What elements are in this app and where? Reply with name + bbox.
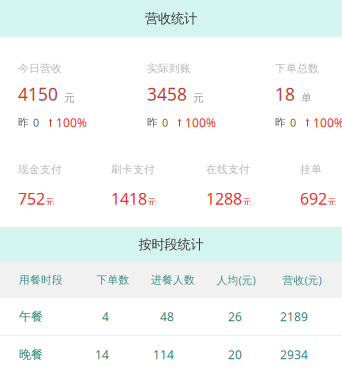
staticText: 3458 — [147, 82, 187, 105]
staticText: 114 — [153, 346, 174, 362]
staticText: 下单总数 — [275, 62, 319, 75]
staticText: 挂单 — [300, 163, 322, 176]
button[interactable]: 在线支付 — [206, 164, 300, 205]
button[interactable]: 午餐 — [0, 298, 342, 335]
staticText: 元 — [64, 91, 75, 104]
staticText: 0 — [162, 115, 168, 130]
staticText: 4150 — [18, 82, 58, 105]
staticText: 752 — [18, 188, 45, 209]
staticText: 下单数 — [96, 273, 129, 286]
staticText: 营收统计 — [145, 10, 197, 27]
button[interactable]: 刷卡支付 — [111, 164, 206, 205]
staticText: 元 — [147, 197, 156, 208]
staticText: 18 — [275, 82, 295, 105]
staticText: 昨 — [147, 116, 158, 129]
staticText: 单 — [301, 91, 312, 104]
staticText: 人均(元) — [216, 273, 255, 287]
staticText: 100% — [313, 114, 342, 130]
staticText: 元 — [327, 197, 336, 208]
staticText: 元 — [45, 197, 54, 208]
button[interactable]: 现金支付 — [18, 164, 111, 205]
button[interactable]: 晚餐 — [0, 336, 342, 371]
staticText: 2934 — [280, 346, 308, 362]
staticText: 进餐人数 — [151, 273, 195, 286]
staticText: 100% — [185, 114, 216, 130]
staticText: 元 — [193, 91, 204, 104]
button[interactable]: 下单总数 — [275, 63, 342, 128]
button[interactable]: 今日营收 — [18, 63, 147, 128]
staticText: 用餐时段 — [19, 273, 63, 286]
staticText: 20 — [228, 346, 242, 362]
staticText: 营收(元) — [282, 273, 321, 287]
staticText: 0 — [290, 115, 296, 130]
staticText: 692 — [300, 188, 327, 209]
staticText: 实际到账 — [147, 62, 191, 75]
staticText: 元 — [242, 197, 251, 208]
staticText: 4 — [102, 308, 109, 324]
staticText: 晚餐 — [19, 347, 43, 362]
button[interactable]: 挂单 — [300, 164, 342, 205]
staticText: 昨 — [275, 116, 286, 129]
staticText: 刷卡支付 — [111, 163, 155, 176]
staticText: 2189 — [280, 308, 308, 324]
staticText: 1288 — [206, 188, 242, 209]
staticText: 按时段统计 — [138, 236, 203, 253]
staticText: 昨 — [18, 116, 29, 129]
staticText: 在线支付 — [206, 163, 250, 176]
button[interactable]: 实际到账 — [147, 63, 275, 128]
staticText: 100% — [56, 114, 87, 130]
staticText: 午餐 — [19, 309, 43, 324]
staticText: 14 — [95, 346, 109, 362]
staticText: 1418 — [111, 188, 147, 209]
staticText: 26 — [228, 308, 242, 324]
staticText: 现金支付 — [18, 163, 62, 176]
staticText: 0 — [33, 115, 39, 130]
staticText: 今日营收 — [18, 62, 62, 75]
staticText: 48 — [160, 308, 174, 324]
